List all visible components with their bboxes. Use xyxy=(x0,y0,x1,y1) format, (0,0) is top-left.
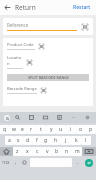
staticText: Restart xyxy=(73,4,91,11)
button[interactable]: a xyxy=(5,136,14,145)
button[interactable]: Search xyxy=(10,112,24,123)
button[interactable]: Voice input xyxy=(20,158,29,167)
button[interactable]: Scan barcode xyxy=(80,22,89,31)
staticText: ?123 xyxy=(2,160,10,165)
button[interactable]: Stickers xyxy=(24,112,38,123)
button[interactable]: s xyxy=(14,136,23,145)
button[interactable]: p xyxy=(86,125,96,134)
button[interactable]: f xyxy=(32,136,41,145)
button[interactable]: Comma xyxy=(12,158,20,167)
button[interactable]: o xyxy=(76,125,86,134)
button[interactable]: Shift xyxy=(0,147,13,156)
button[interactable]: Scan barcode xyxy=(39,86,47,94)
staticText: Product Code xyxy=(7,42,34,48)
staticText: u xyxy=(59,126,63,133)
staticText: r xyxy=(30,126,33,133)
button[interactable]: t xyxy=(36,125,46,134)
staticText: s xyxy=(17,137,20,144)
button[interactable]: y xyxy=(46,125,56,134)
button[interactable]: w xyxy=(9,125,18,134)
button[interactable]: Period xyxy=(73,158,82,167)
staticText: G xyxy=(6,116,9,121)
staticText: Return xyxy=(15,3,36,12)
staticText: q xyxy=(3,126,7,133)
button[interactable]: Reference xyxy=(7,22,89,31)
staticText: a xyxy=(8,137,11,144)
button[interactable]: Scan barcode xyxy=(25,58,33,66)
button[interactable]: SPLIT BARCODE RANGE xyxy=(7,74,89,81)
button[interactable]: r xyxy=(27,125,36,134)
staticText: , xyxy=(15,159,17,166)
button[interactable]: Back xyxy=(0,0,15,15)
button[interactable]: v xyxy=(42,147,52,156)
button[interactable]: Enter xyxy=(82,158,96,167)
button[interactable]: Restart xyxy=(68,1,96,14)
button[interactable]: b xyxy=(52,147,62,156)
staticText: l xyxy=(85,137,87,144)
staticText: c xyxy=(36,148,39,155)
staticText: n xyxy=(65,148,69,155)
button[interactable]: GIF xyxy=(38,112,52,123)
button[interactable]: Product Code xyxy=(7,42,89,50)
button[interactable]: Emoji xyxy=(52,112,66,123)
button[interactable]: Location xyxy=(7,55,89,69)
staticText: w xyxy=(12,126,16,133)
staticText: . xyxy=(77,159,79,166)
button[interactable]: z xyxy=(13,147,22,156)
button[interactable]: Scan barcode xyxy=(37,42,45,50)
button[interactable]: u xyxy=(56,125,66,134)
staticText: x xyxy=(26,148,29,155)
staticText: y xyxy=(50,126,53,133)
button[interactable]: c xyxy=(32,147,42,156)
button[interactable]: x xyxy=(22,147,32,156)
staticText: k xyxy=(75,137,78,144)
staticText: i xyxy=(70,126,72,133)
staticText: Reference xyxy=(7,22,29,28)
button[interactable]: i xyxy=(66,125,76,134)
button[interactable]: e xyxy=(18,125,27,134)
button[interactable]: d xyxy=(23,136,32,145)
staticText: z xyxy=(16,148,19,155)
staticText: v xyxy=(46,148,49,155)
staticText: e xyxy=(21,126,24,133)
staticText: m xyxy=(75,148,80,155)
staticText: Barcode Range xyxy=(7,86,37,92)
staticText: SPLIT BARCODE RANGE xyxy=(28,75,69,80)
staticText: o xyxy=(79,126,83,133)
button[interactable]: Backspace xyxy=(82,147,96,156)
button[interactable]: More xyxy=(66,112,80,123)
button[interactable]: Google xyxy=(4,115,10,121)
button[interactable]: ?123 xyxy=(0,158,12,167)
staticText: g xyxy=(44,137,48,144)
button[interactable]: m xyxy=(72,147,82,156)
staticText: h xyxy=(54,137,58,144)
staticText: Location xyxy=(7,55,23,67)
staticText: p xyxy=(89,126,93,133)
staticText: t xyxy=(40,126,42,133)
button[interactable]: g xyxy=(41,136,51,145)
staticText: d xyxy=(26,137,30,144)
button[interactable]: n xyxy=(62,147,72,156)
staticText: f xyxy=(36,137,38,144)
staticText: j xyxy=(65,137,67,144)
button[interactable]: j xyxy=(61,136,71,145)
button[interactable]: k xyxy=(71,136,81,145)
staticText: b xyxy=(55,148,59,155)
button[interactable]: q xyxy=(0,125,9,134)
button[interactable]: h xyxy=(51,136,61,145)
button[interactable]: l xyxy=(81,136,91,145)
button[interactable]: Barcode Range xyxy=(7,86,89,94)
button[interactable]: Settings xyxy=(80,112,94,123)
